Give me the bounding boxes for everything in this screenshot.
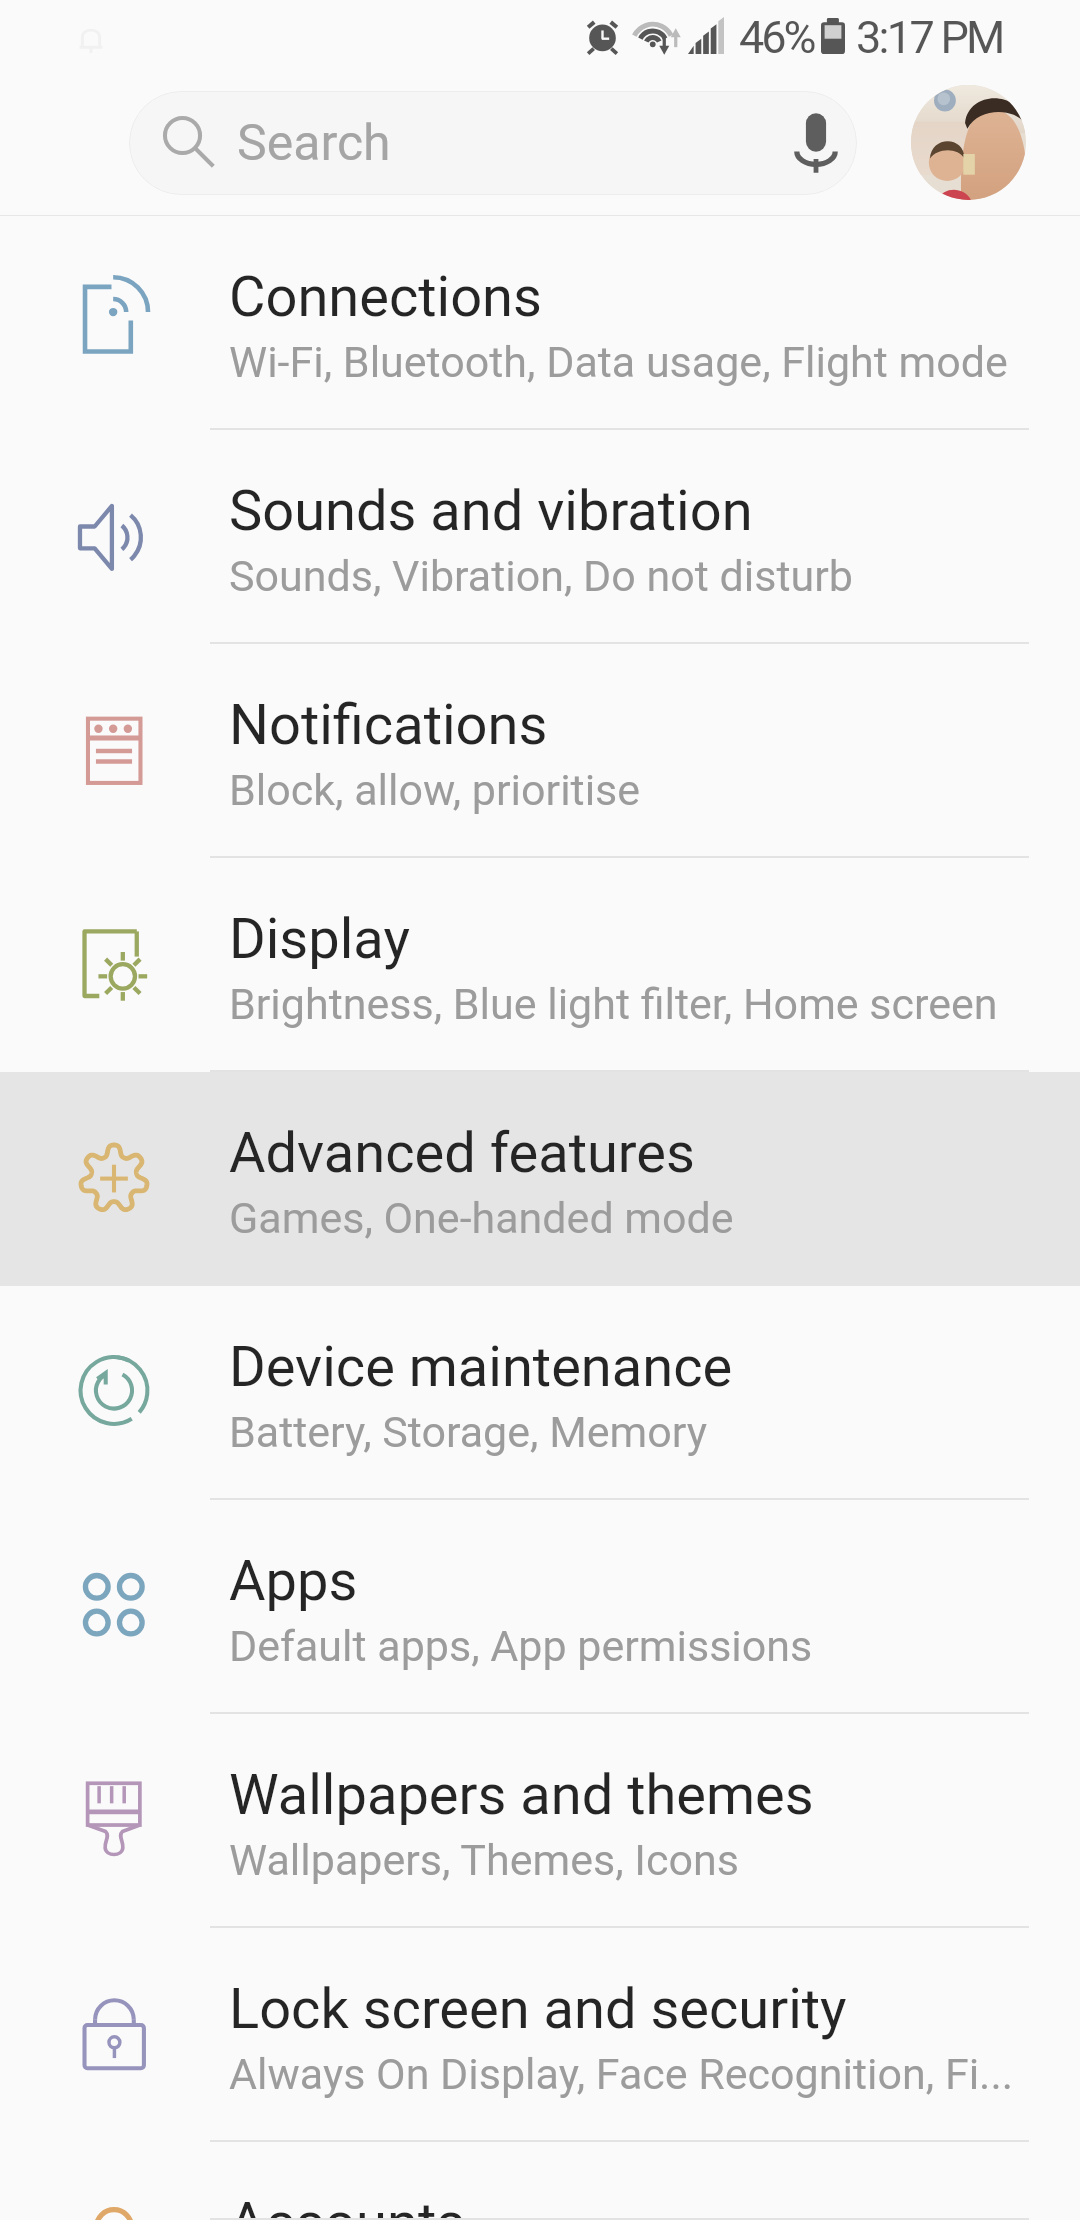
button[interactable]: Voice search xyxy=(764,91,857,195)
staticText: Sounds, Vibration, Do not disturb xyxy=(229,551,853,601)
staticText: Accounts xyxy=(229,2190,466,2220)
staticText: 3:17 PM xyxy=(856,11,1003,64)
staticText: Brightness, Blue light filter, Home scre… xyxy=(229,979,998,1029)
staticText: Wallpapers, Themes, Icons xyxy=(229,1835,739,1885)
staticText: Lock screen and security xyxy=(229,1976,847,2042)
staticText: Battery, Storage, Memory xyxy=(229,1407,708,1457)
staticText: Notifications xyxy=(229,692,548,758)
button[interactable]: Wallpapers and themes xyxy=(0,1714,1080,1928)
button[interactable]: Search xyxy=(129,91,857,195)
staticText: Block, allow, prioritise xyxy=(229,765,641,815)
staticText: Advanced features xyxy=(229,1120,695,1186)
button[interactable]: Lock screen and security xyxy=(0,1928,1080,2142)
staticText: Device maintenance xyxy=(229,1334,733,1400)
staticText: Apps xyxy=(229,1548,358,1614)
staticText: Always On Display, Face Recognition, Fi.… xyxy=(229,2049,1014,2099)
staticText: Wallpapers and themes xyxy=(229,1762,814,1828)
button[interactable]: Device maintenance xyxy=(0,1286,1080,1500)
button[interactable]: Profile xyxy=(911,85,1026,200)
staticText: Search xyxy=(237,114,391,173)
staticText: Sounds and vibration xyxy=(229,478,753,544)
staticText: Default apps, App permissions xyxy=(229,1621,813,1671)
button[interactable]: Apps xyxy=(0,1500,1080,1714)
staticText: Display xyxy=(229,906,410,972)
button[interactable]: Notifications xyxy=(0,644,1080,858)
button[interactable]: Sounds and vibration xyxy=(0,430,1080,644)
button[interactable]: Connections xyxy=(0,216,1080,430)
button[interactable]: Advanced features xyxy=(0,1072,1080,1286)
button[interactable]: Accounts xyxy=(0,2142,1080,2220)
staticText: 46% xyxy=(739,11,814,64)
staticText: Games, One-handed mode xyxy=(229,1193,734,1243)
staticText: Connections xyxy=(229,264,542,330)
button[interactable]: Display xyxy=(0,858,1080,1072)
staticText: Wi-Fi, Bluetooth, Data usage, Flight mod… xyxy=(229,337,1008,387)
